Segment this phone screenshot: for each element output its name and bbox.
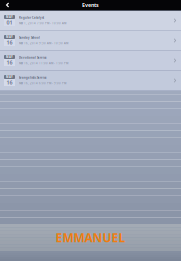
staticText: Mar 16, 2014 11:00 AM - 1:00 PM [19,61,68,65]
staticText: MAY [6,15,13,19]
staticText: Events [82,1,99,9]
button[interactable]: Back [0,0,15,10]
staticText: 16 [6,79,12,86]
staticText: 16 [6,59,12,66]
button[interactable]: MAY [0,31,181,51]
staticText: Regular Catalyst [19,16,44,19]
staticText: MAY [6,55,13,59]
button[interactable]: MAY [0,11,181,31]
staticText: Mar 1, 2014 7:00 PM - 10:00 AM [19,21,66,25]
staticText: 01 [6,19,12,26]
staticText: Mar 16, 2014 9:30 AM - 10:30 AM [19,41,68,45]
staticText: 16 [6,39,12,46]
staticText: Sunday School [19,36,40,39]
staticText: Mar 16, 2014 6:00 PM - 9:00 PM [19,81,66,85]
button[interactable]: MAY [0,71,181,91]
staticText: EMMANUEL [55,229,125,245]
staticText: MAY [6,75,13,79]
staticText: MAY [6,35,13,39]
staticText: Devotional Service [19,56,47,59]
staticText: Evangelistic Service [19,76,47,79]
button[interactable]: MAY [0,51,181,71]
